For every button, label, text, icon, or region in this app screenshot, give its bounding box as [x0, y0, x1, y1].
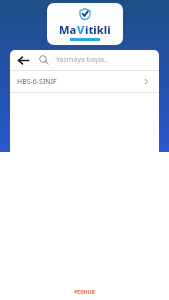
other: Back [17, 54, 30, 67]
staticText: HBS-6-SINIF [17, 77, 142, 87]
staticText: Yazmaya başla.. [56, 55, 108, 65]
staticText: itikli [85, 22, 111, 37]
staticText: PEDHUB [74, 289, 95, 296]
button[interactable]: Back [10, 50, 159, 70]
staticText: Ma [59, 22, 77, 37]
button[interactable]: Ma [47, 3, 123, 45]
button[interactable]: HBS-6-SINIF [10, 71, 159, 92]
staticText: V [77, 22, 85, 37]
